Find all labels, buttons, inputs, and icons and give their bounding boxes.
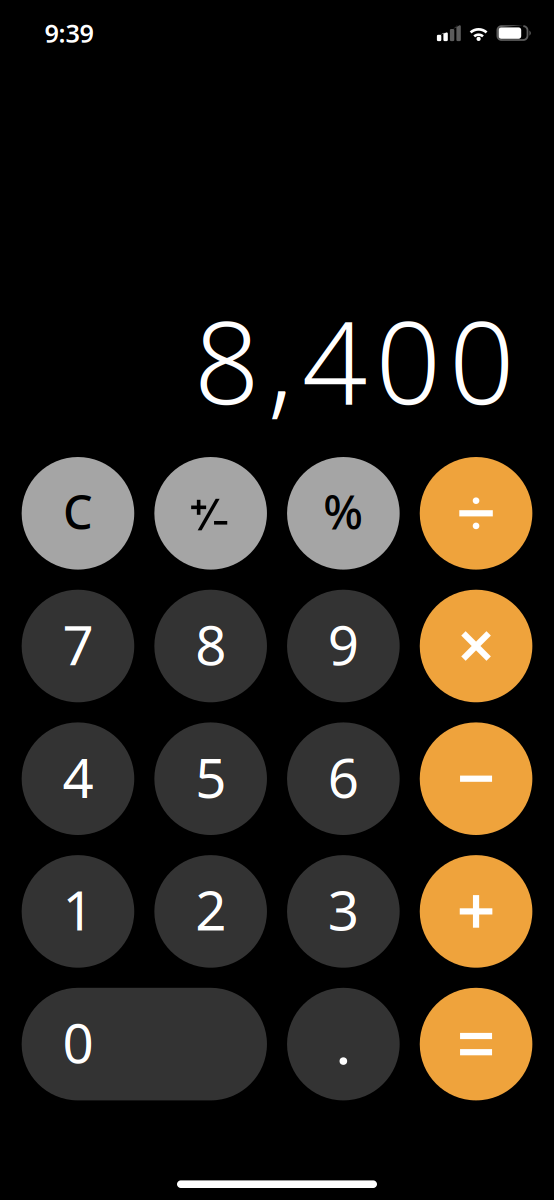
staticText: 9:39 (44, 16, 93, 50)
button[interactable]: Equals (420, 988, 532, 1100)
button[interactable]: Decimal point (287, 988, 400, 1100)
button[interactable]: Clear (22, 457, 134, 570)
staticText: 2 (195, 873, 226, 946)
button[interactable]: Multiply (420, 590, 532, 702)
button[interactable]: 6 (287, 722, 400, 835)
staticText: 7 (62, 608, 93, 680)
button[interactable]: 3 (287, 855, 400, 968)
button[interactable]: 8 (154, 590, 267, 702)
staticText: 8,400 (194, 284, 514, 436)
button[interactable]: 7 (22, 590, 134, 702)
staticText: C (63, 480, 93, 542)
button[interactable]: Percent (287, 457, 400, 570)
button[interactable]: 5 (154, 722, 267, 835)
button[interactable]: Change sign (154, 457, 267, 570)
staticText: 0 (62, 1006, 93, 1078)
button[interactable]: 0 (22, 988, 267, 1100)
button[interactable]: 2 (154, 855, 267, 968)
staticText: 8 (195, 608, 226, 680)
staticText: 6 (328, 740, 359, 813)
button[interactable]: Subtract (420, 722, 532, 835)
staticText: 9 (328, 608, 359, 680)
button[interactable]: 1 (22, 855, 134, 968)
button[interactable]: Add (420, 855, 532, 968)
staticText: % (323, 480, 363, 542)
staticText: 1 (62, 873, 93, 946)
button[interactable]: Divide (420, 457, 532, 570)
staticText: 5 (195, 740, 226, 813)
button[interactable]: 4 (22, 722, 134, 835)
staticText: 4 (62, 740, 93, 813)
staticText: 3 (328, 873, 359, 946)
button[interactable]: 9 (287, 590, 400, 702)
